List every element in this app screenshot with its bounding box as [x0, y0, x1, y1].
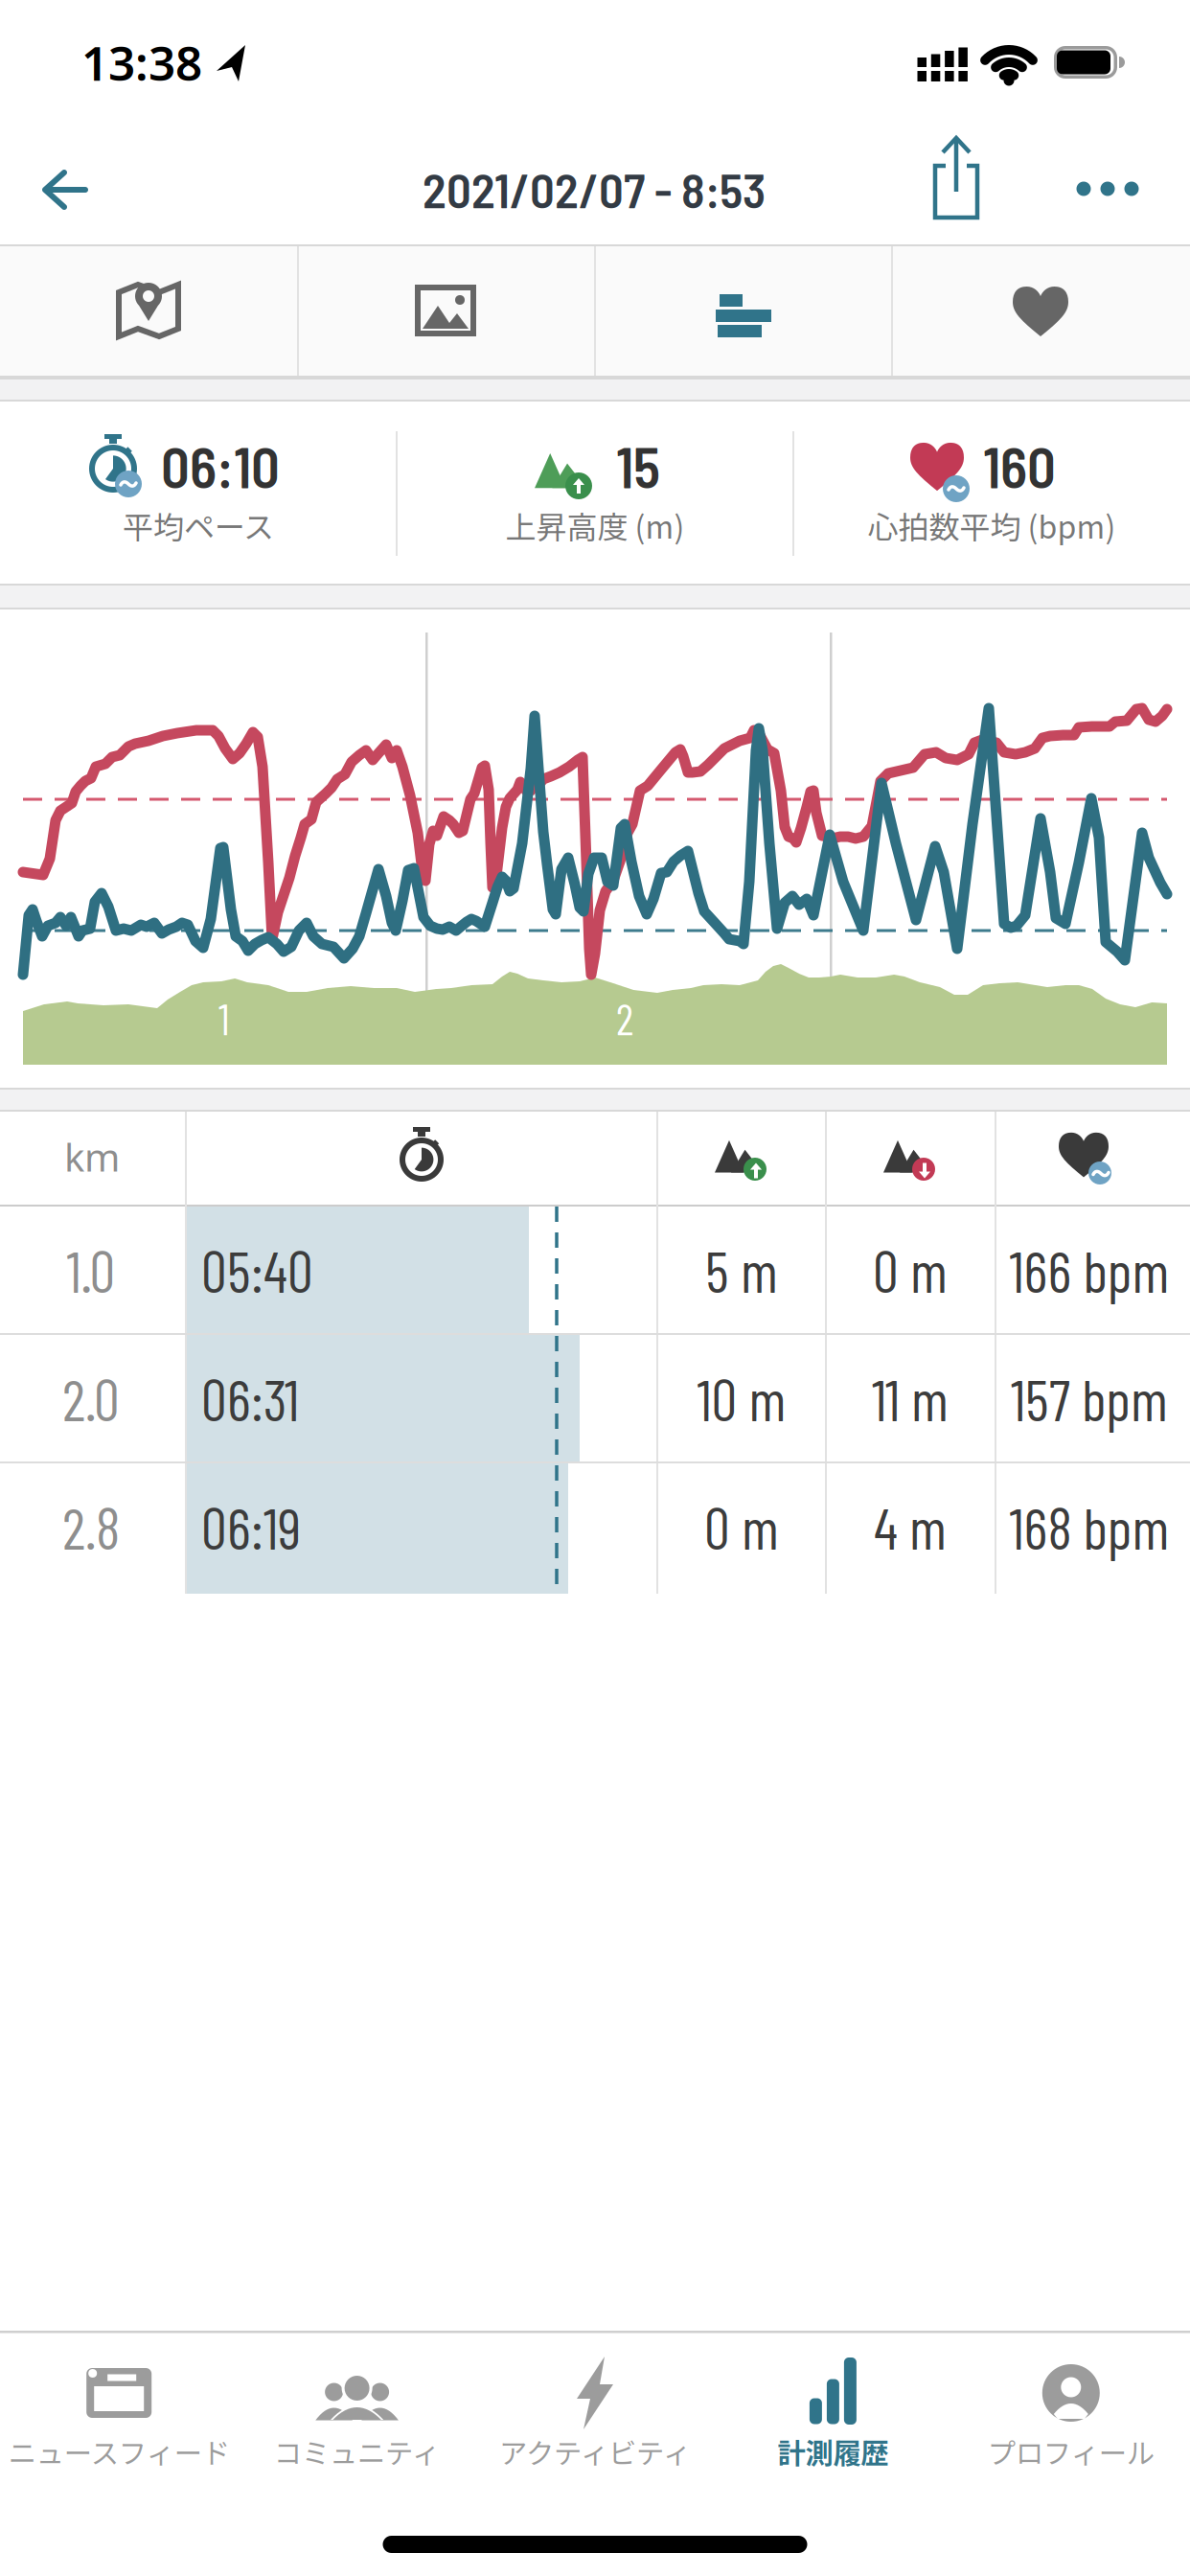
staticText: 06:19: [201, 1492, 301, 1561]
button[interactable]: More: [1076, 181, 1139, 196]
button[interactable]: Photos: [299, 247, 592, 374]
staticText: 4 m: [874, 1492, 947, 1561]
staticText: 15: [616, 432, 660, 499]
staticText: ニュースフィード: [8, 2431, 230, 2472]
staticText: 心拍数平均 (bpm): [868, 503, 1116, 547]
staticText: 5 m: [705, 1235, 778, 1304]
staticText: 2: [616, 992, 633, 1044]
staticText: 05:40: [201, 1235, 313, 1304]
staticText: 166 bpm: [1009, 1235, 1169, 1304]
button[interactable]: Share: [927, 134, 985, 220]
staticText: 0 m: [704, 1492, 779, 1561]
staticText: 2.8: [62, 1492, 120, 1561]
staticText: 2021/02/07 - 8:53: [423, 160, 766, 218]
staticText: プロフィール: [988, 2431, 1154, 2472]
staticText: 2.0: [62, 1364, 120, 1433]
staticText: 平均ペース: [123, 503, 274, 547]
button[interactable]: Map: [2, 247, 295, 374]
staticText: 11 m: [872, 1364, 949, 1433]
staticText: 上昇高度 (m): [505, 503, 685, 547]
button[interactable]: Heart rate: [894, 247, 1187, 374]
staticText: 157 bpm: [1011, 1364, 1168, 1433]
staticText: 160: [983, 432, 1056, 499]
button[interactable]: アクティビティ: [485, 2331, 705, 2484]
button[interactable]: プロフィール: [961, 2331, 1181, 2484]
button[interactable]: コミュニティ: [247, 2331, 467, 2484]
button[interactable]: 計測履歴: [723, 2331, 943, 2484]
staticText: 1: [218, 992, 230, 1044]
staticText: 168 bpm: [1009, 1492, 1169, 1561]
staticText: 06:31: [201, 1364, 299, 1433]
staticText: コミュニティ: [274, 2431, 440, 2472]
staticText: 10 m: [697, 1364, 786, 1433]
staticText: 1.0: [67, 1235, 115, 1304]
button[interactable]: Back: [43, 172, 87, 208]
button[interactable]: Stats: [597, 247, 890, 374]
staticText: 13:38: [81, 30, 202, 94]
staticText: 0 m: [873, 1235, 948, 1304]
staticText: 計測履歴: [777, 2431, 889, 2472]
staticText: アクティビティ: [499, 2431, 691, 2472]
staticText: km: [64, 1131, 120, 1183]
button[interactable]: ニュースフィード: [9, 2331, 229, 2484]
staticText: 06:10: [161, 432, 280, 499]
